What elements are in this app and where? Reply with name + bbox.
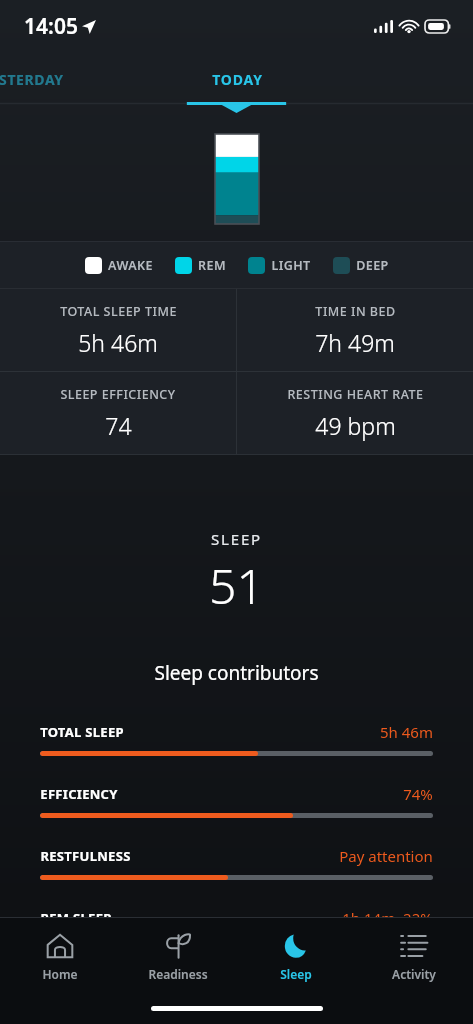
staticText: 14:05	[24, 12, 78, 41]
staticText: AWAKE	[108, 257, 153, 274]
button[interactable]: TOTAL SLEEP TIME	[0, 289, 236, 371]
button[interactable]: RESTING HEART RATE	[237, 372, 473, 454]
staticText: Home	[42, 966, 78, 982]
staticText: TOTAL SLEEP	[40, 723, 124, 741]
button[interactable]: Home	[0, 918, 119, 996]
staticText: SLEEP	[211, 529, 262, 549]
staticText: TOTAL SLEEP TIME	[60, 303, 177, 320]
staticText: REM SLEEP	[40, 909, 112, 927]
staticText: SLEEP EFFICIENCY	[60, 386, 176, 403]
button[interactable]: TIME IN BED	[237, 289, 473, 371]
staticText: LIGHT	[271, 257, 311, 274]
button[interactable]: REM SLEEP	[0, 908, 473, 970]
staticText: Readiness	[148, 966, 208, 982]
staticText: RESTING HEART RATE	[287, 386, 424, 403]
button[interactable]: Activity	[355, 918, 473, 996]
staticText: YESTERDAY	[0, 70, 64, 89]
staticText: EFFICIENCY	[40, 785, 118, 803]
staticText: 74%	[403, 784, 433, 804]
staticText: Activity	[392, 966, 436, 982]
staticText: REM	[198, 257, 226, 274]
button[interactable]: TOTAL SLEEP	[0, 722, 473, 784]
button[interactable]: EFFICIENCY	[0, 784, 473, 846]
staticText: RESTFULNESS	[40, 847, 131, 865]
staticText: 1h 14m, 22%	[342, 908, 433, 928]
button[interactable]: Sleep	[237, 918, 355, 996]
staticText: 51	[209, 553, 264, 618]
staticText: Sleep contributors	[154, 660, 319, 686]
staticText: 49 bpm	[315, 410, 396, 441]
staticText: 5h 46m	[78, 327, 158, 358]
staticText: 74	[105, 410, 132, 441]
staticText: TODAY	[212, 70, 263, 89]
button[interactable]: TODAY	[157, 56, 317, 102]
button[interactable]: RESTFULNESS	[0, 846, 473, 908]
staticText: Sleep	[280, 966, 312, 982]
staticText: 5h 46m	[380, 722, 433, 742]
staticText: 7h 49m	[315, 327, 395, 358]
staticText: TIME IN BED	[315, 303, 396, 320]
button[interactable]: Readiness	[119, 918, 237, 996]
staticText: DEEP	[356, 257, 389, 274]
button[interactable]: SLEEP EFFICIENCY	[0, 372, 236, 454]
button[interactable]: YESTERDAY	[0, 56, 92, 102]
staticText: Pay attention	[339, 846, 433, 866]
